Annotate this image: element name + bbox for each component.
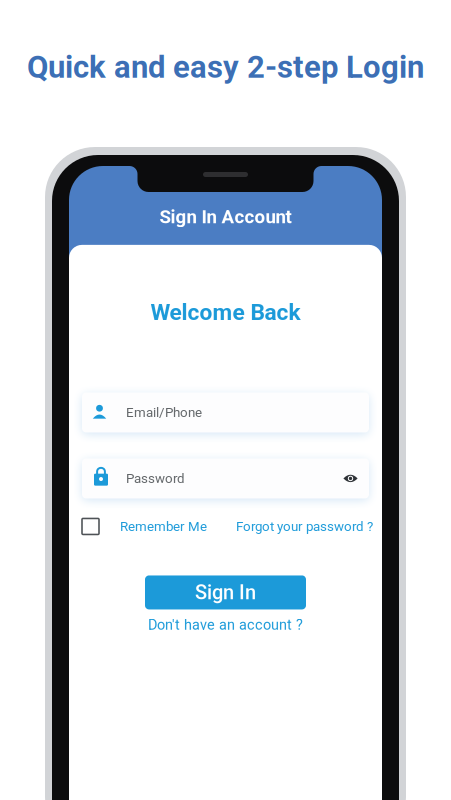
staticText: Sign In	[195, 581, 256, 604]
button[interactable]: Sign In	[145, 575, 306, 609]
staticText: Forgot your password ?	[236, 519, 373, 534]
staticText: Quick and easy 2-step Login	[27, 49, 424, 85]
button[interactable]: Forgot your password ?	[236, 513, 373, 540]
staticText: Remember Me	[120, 519, 207, 534]
staticText: Email/Phone	[126, 405, 202, 420]
button[interactable]: Remember Me	[78, 512, 207, 540]
staticText: Password	[126, 471, 185, 486]
staticText: Don't have an account ?	[148, 616, 303, 633]
staticText: Sign In Account	[159, 206, 291, 228]
button[interactable]: Don't have an account ?	[148, 616, 303, 633]
staticText: Welcome Back	[150, 299, 300, 325]
